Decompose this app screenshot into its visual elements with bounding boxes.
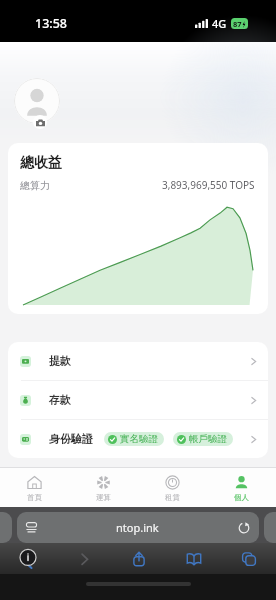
- button[interactable]: Change photo: [33, 115, 47, 129]
- button[interactable]: 身份驗證: [8, 420, 268, 458]
- button[interactable]: 存款: [8, 381, 268, 419]
- staticText: 身份驗證: [49, 432, 93, 446]
- button[interactable]: Page settings: [17, 512, 259, 543]
- button[interactable]: Share: [111, 544, 166, 574]
- staticText: 總收益: [20, 154, 62, 172]
- button[interactable]: 個人: [207, 468, 276, 507]
- staticText: 首頁: [27, 493, 42, 502]
- button[interactable]: 租賃: [138, 468, 207, 507]
- staticText: 13:58: [35, 15, 68, 32]
- button[interactable]: 提款: [8, 342, 268, 380]
- staticText: 總算力: [20, 179, 50, 192]
- button[interactable]: [0, 512, 12, 543]
- staticText: 87: [233, 19, 242, 29]
- staticText: 提款: [49, 354, 71, 368]
- staticText: 存款: [49, 393, 71, 407]
- staticText: 4G: [212, 16, 227, 31]
- button[interactable]: 帳戶驗證: [173, 432, 233, 446]
- button[interactable]: 首頁: [0, 468, 69, 507]
- button[interactable]: Profile photo: [14, 78, 60, 124]
- other: Page settings: [26, 522, 37, 533]
- button[interactable]: 實名驗證: [104, 432, 164, 446]
- staticText: 3,893,969,550 TOPS: [162, 178, 255, 192]
- staticText: 個人: [234, 493, 249, 502]
- staticText: ntop.ink: [116, 520, 159, 535]
- button[interactable]: 運算: [69, 468, 138, 507]
- button[interactable]: Tabs: [221, 544, 276, 574]
- staticText: 帳戶驗證: [189, 433, 227, 445]
- button[interactable]: Back: [0, 544, 56, 574]
- staticText: 運算: [96, 493, 111, 502]
- other: Reload: [238, 522, 250, 534]
- staticText: 租賃: [165, 493, 180, 502]
- button[interactable]: [264, 512, 276, 543]
- button[interactable]: Forward: [56, 544, 111, 574]
- staticText: 實名驗證: [120, 433, 158, 445]
- button[interactable]: Bookmarks: [166, 544, 221, 574]
